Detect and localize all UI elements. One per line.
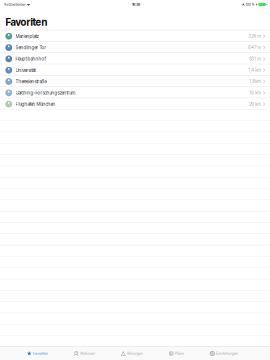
staticText: Stationen: [80, 351, 95, 356]
staticText: Flughafen München: [15, 101, 55, 107]
button[interactable]: Flughafen München: [0, 98, 270, 109]
staticText: Theresienstraße: [15, 79, 46, 84]
staticText: 16 km: [249, 90, 261, 95]
staticText: 324 m: [248, 34, 261, 39]
button[interactable]: Sendlinger Tor: [0, 41, 270, 52]
staticText: Einstellungen: [216, 351, 238, 356]
staticText: 1,8 km: [249, 79, 261, 84]
button[interactable]: Marienplatz: [0, 30, 270, 41]
staticText: Pläne: [175, 351, 184, 356]
button[interactable]: Garching-Forschungszentrum: [0, 86, 270, 98]
staticText: 100 %: [246, 2, 255, 7]
button[interactable]: Pläne: [169, 347, 184, 360]
staticText: Sendlinger Tor: [15, 45, 46, 50]
button[interactable]: Einstellungen: [210, 347, 238, 360]
staticText: Netzbetreiber: [3, 2, 25, 7]
staticText: Universität: [15, 67, 35, 73]
button[interactable]: Hauptbahnhof: [0, 52, 270, 64]
staticText: 29 km: [249, 101, 261, 107]
staticText: 831 m: [249, 56, 261, 61]
button[interactable]: Favoriten: [27, 347, 48, 360]
staticText: 16:38: [132, 2, 140, 7]
staticText: 647 m: [248, 45, 261, 50]
staticText: Hauptbahnhof: [15, 56, 45, 62]
button[interactable]: Stationen: [74, 347, 95, 360]
staticText: Störungen: [127, 351, 143, 356]
staticText: Garching-Forschungszentrum: [15, 90, 75, 96]
button[interactable]: Theresienstraße: [0, 75, 270, 86]
staticText: 1,4 km: [248, 67, 261, 73]
staticText: Marienplatz: [15, 33, 38, 39]
staticText: Favoriten: [33, 351, 48, 356]
button[interactable]: Universität: [0, 64, 270, 75]
staticText: Favoriten: [6, 16, 48, 28]
button[interactable]: Störungen: [121, 347, 143, 360]
